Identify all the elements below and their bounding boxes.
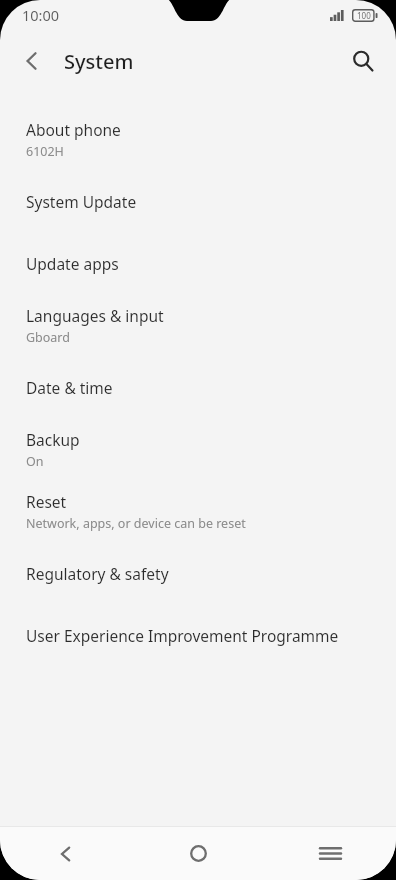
button[interactable]: User Experience Improvement Programme bbox=[0, 604, 396, 666]
staticText: 100 bbox=[357, 10, 371, 21]
button[interactable]: Reset bbox=[0, 480, 396, 542]
staticText: Backup bbox=[26, 429, 80, 450]
staticText: Update apps bbox=[26, 253, 119, 274]
button[interactable]: Search bbox=[340, 38, 386, 84]
button[interactable]: Recent apps bbox=[264, 827, 396, 880]
staticText: 6102H bbox=[26, 143, 64, 160]
staticText: Network, apps, or device can be reset bbox=[26, 515, 246, 532]
button[interactable]: Date & time bbox=[0, 356, 396, 418]
button[interactable]: Home bbox=[132, 827, 264, 880]
staticText: Gboard bbox=[26, 329, 70, 346]
staticText: Regulatory & safety bbox=[26, 563, 169, 584]
staticText: On bbox=[26, 453, 44, 470]
button[interactable]: Back bbox=[10, 39, 54, 83]
staticText: Reset bbox=[26, 491, 67, 512]
staticText: 10:00 bbox=[22, 5, 60, 25]
button[interactable]: System Update bbox=[0, 170, 396, 232]
staticText: User Experience Improvement Programme bbox=[26, 625, 339, 646]
staticText: Date & time bbox=[26, 377, 113, 398]
button[interactable]: Update apps bbox=[0, 232, 396, 294]
staticText: Languages & input bbox=[26, 305, 164, 326]
button[interactable]: About phone bbox=[0, 108, 396, 170]
button[interactable]: Regulatory & safety bbox=[0, 542, 396, 604]
button[interactable]: Back bbox=[0, 827, 132, 880]
staticText: System Update bbox=[26, 191, 137, 212]
staticText: System bbox=[64, 48, 134, 75]
staticText: About phone bbox=[26, 119, 121, 140]
button[interactable]: Languages & input bbox=[0, 294, 396, 356]
button[interactable]: Backup bbox=[0, 418, 396, 480]
